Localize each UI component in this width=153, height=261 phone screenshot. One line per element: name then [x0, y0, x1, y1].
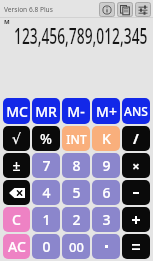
button[interactable] — [122, 207, 150, 232]
staticText: AC — [8, 237, 26, 256]
button[interactable]: ± — [3, 153, 30, 178]
staticText: 7 — [42, 156, 51, 175]
button[interactable]: % — [32, 126, 60, 151]
button[interactable]: K — [92, 126, 120, 151]
button[interactable]: Settings — [135, 2, 151, 17]
button[interactable]: 8 — [62, 153, 90, 178]
staticText: √ — [12, 131, 21, 147]
button[interactable] — [122, 180, 150, 205]
staticText: 4 — [42, 183, 51, 202]
staticText: 1 — [42, 210, 51, 229]
button[interactable]: 1 — [32, 207, 60, 232]
button[interactable] — [92, 234, 120, 259]
staticText: % — [40, 129, 52, 148]
staticText: K — [102, 129, 111, 148]
button[interactable]: 6 — [92, 180, 120, 205]
button[interactable]: 9 — [92, 153, 120, 178]
staticText: M+ — [96, 102, 117, 121]
staticText: 6 — [102, 183, 111, 202]
button[interactable] — [3, 180, 30, 205]
staticText: ± — [12, 156, 21, 175]
staticText: MR — [35, 102, 57, 121]
button[interactable]: MR — [32, 98, 60, 124]
button[interactable]: C — [3, 207, 30, 232]
button[interactable]: 00 — [62, 234, 90, 259]
staticText: 2 — [72, 210, 81, 229]
staticText: / — [133, 129, 139, 148]
button[interactable]: 4 — [32, 180, 60, 205]
button[interactable]: Info — [99, 2, 115, 17]
button[interactable]: 0 — [32, 234, 60, 259]
button[interactable]: ANS — [122, 98, 150, 124]
button[interactable]: 5 — [62, 180, 90, 205]
staticText: 3 — [102, 210, 111, 229]
staticText: 0 — [42, 237, 51, 256]
button[interactable]: / — [122, 126, 150, 151]
staticText: ANS — [124, 103, 148, 119]
staticText: M- — [67, 102, 85, 121]
button[interactable]: MC — [3, 98, 30, 124]
staticText: 8 — [72, 156, 81, 175]
button[interactable]: M+ — [92, 98, 120, 124]
staticText: 5 — [72, 183, 81, 202]
button[interactable] — [122, 234, 150, 259]
staticText: 00 — [69, 238, 84, 256]
staticText: INT — [66, 131, 87, 147]
button[interactable]: 7 — [32, 153, 60, 178]
staticText: 9 — [102, 156, 111, 175]
button[interactable]: 3 — [92, 207, 120, 232]
button[interactable]: 2 — [62, 207, 90, 232]
staticText: Version 6.8 Plus — [4, 5, 53, 14]
staticText: × — [132, 157, 140, 175]
button[interactable]: AC — [3, 234, 30, 259]
button[interactable]: INT — [62, 126, 90, 151]
button[interactable]: Copy — [117, 2, 133, 17]
button[interactable]: × — [122, 153, 150, 178]
button[interactable]: M- — [62, 98, 90, 124]
staticText: C — [12, 210, 21, 229]
button[interactable]: √ — [3, 126, 30, 151]
staticText: MC — [6, 102, 28, 121]
staticText: M — [4, 18, 10, 26]
